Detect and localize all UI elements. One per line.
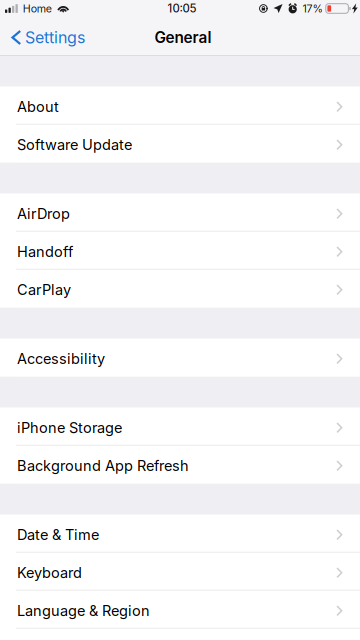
- button[interactable]: Accessibility: [0, 339, 360, 377]
- button[interactable]: About: [0, 87, 360, 125]
- staticText: Accessibility: [17, 350, 105, 367]
- staticText: Home: [23, 2, 52, 15]
- button[interactable]: Handoff: [0, 232, 360, 270]
- staticText: General: [154, 28, 211, 47]
- staticText: iPhone Storage: [17, 419, 122, 436]
- button[interactable]: Software Update: [0, 125, 360, 163]
- button[interactable]: Language & Region: [0, 591, 360, 629]
- staticText: Keyboard: [17, 564, 82, 581]
- staticText: Settings: [25, 28, 85, 47]
- staticText: Handoff: [17, 243, 73, 260]
- staticText: Language & Region: [17, 602, 150, 619]
- staticText: Date & Time: [17, 526, 99, 543]
- staticText: About: [17, 98, 59, 115]
- button[interactable]: Keyboard: [0, 553, 360, 591]
- button[interactable]: AirDrop: [0, 194, 360, 232]
- button[interactable]: CarPlay: [0, 270, 360, 308]
- button[interactable]: Background App Refresh: [0, 446, 360, 484]
- button[interactable]: Date & Time: [0, 515, 360, 553]
- staticText: CarPlay: [17, 281, 71, 298]
- staticText: 10:05: [167, 2, 196, 15]
- staticText: Software Update: [17, 136, 132, 153]
- button[interactable]: Settings: [0, 20, 95, 55]
- staticText: Background App Refresh: [17, 457, 189, 474]
- staticText: 17%: [303, 2, 323, 15]
- button[interactable]: iPhone Storage: [0, 408, 360, 446]
- staticText: AirDrop: [17, 205, 70, 222]
